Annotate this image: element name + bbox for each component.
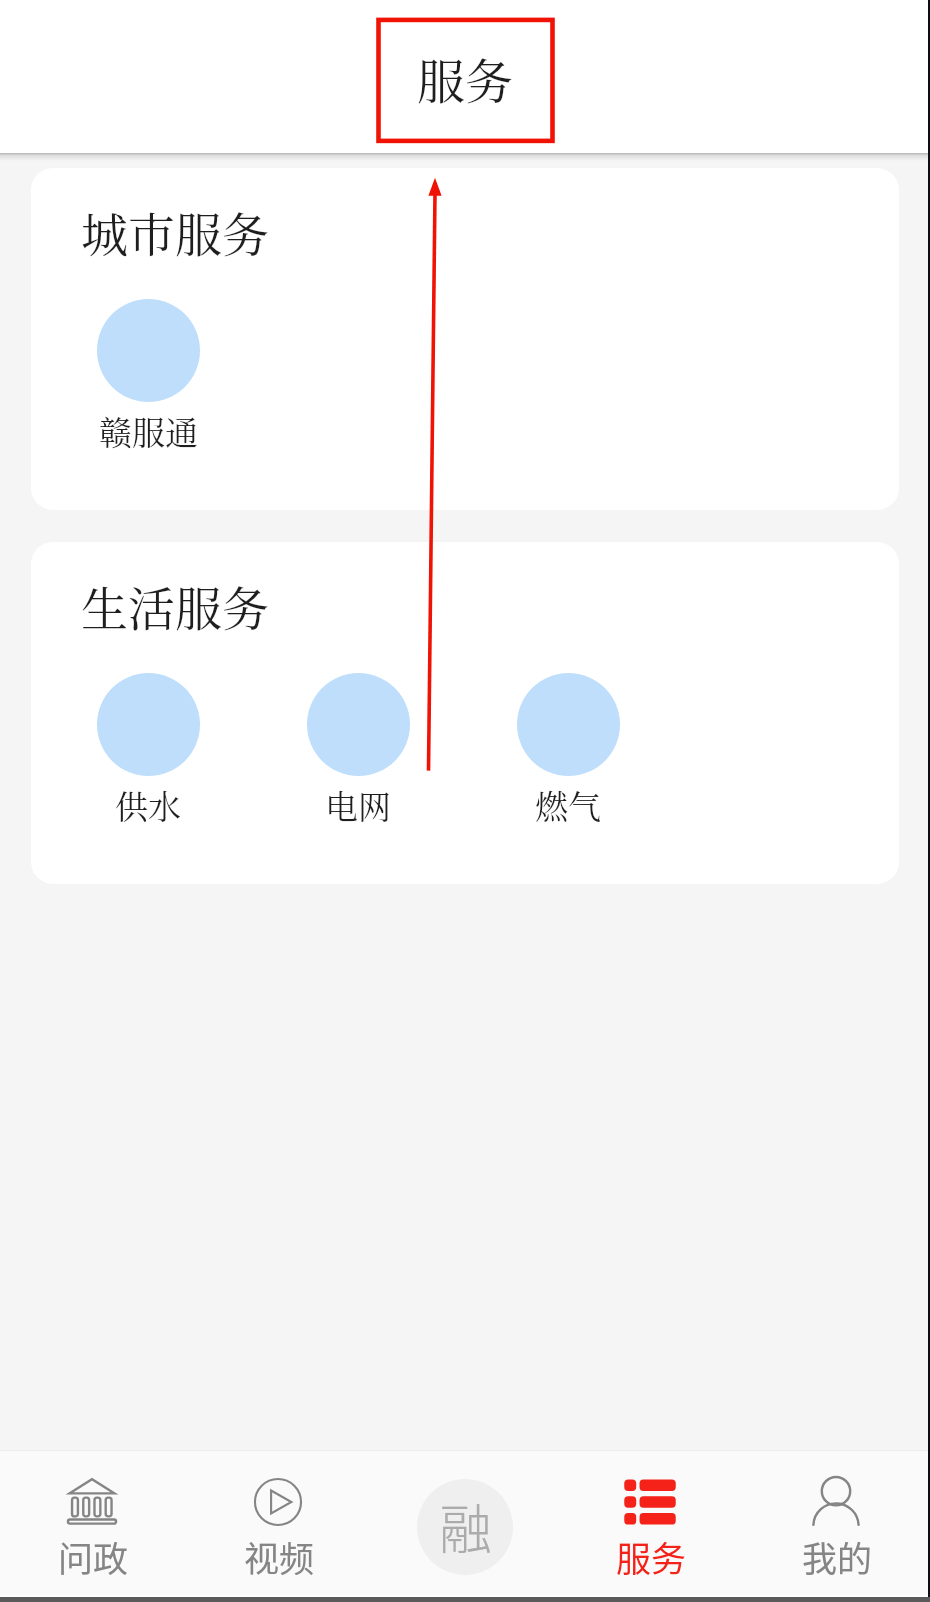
staticText: 燃气 (535, 781, 601, 828)
button[interactable]: 融媒体 (372, 1451, 558, 1595)
button[interactable]: 视频 (186, 1451, 372, 1595)
button[interactable]: 我的 (744, 1451, 930, 1595)
staticText: 问政 (58, 1531, 129, 1582)
staticText: 我的 (802, 1531, 873, 1582)
button[interactable]: 服务 (558, 1451, 744, 1595)
staticText: 赣服通 (99, 407, 198, 454)
staticText: 视频 (244, 1531, 315, 1582)
button[interactable]: 电网 (253, 673, 463, 828)
staticText: 融 (439, 1488, 492, 1565)
staticText: 电网 (325, 781, 391, 828)
staticText: 服务 (417, 44, 514, 113)
staticText: 城市服务 (81, 198, 269, 266)
button[interactable]: 问政 (0, 1451, 186, 1595)
button[interactable]: 供水 (43, 673, 253, 828)
staticText: 生活服务 (81, 572, 269, 640)
staticText: 供水 (115, 781, 181, 828)
button[interactable]: 赣服通 (43, 299, 253, 454)
staticText: 服务 (616, 1531, 687, 1582)
button[interactable]: 燃气 (463, 673, 673, 828)
